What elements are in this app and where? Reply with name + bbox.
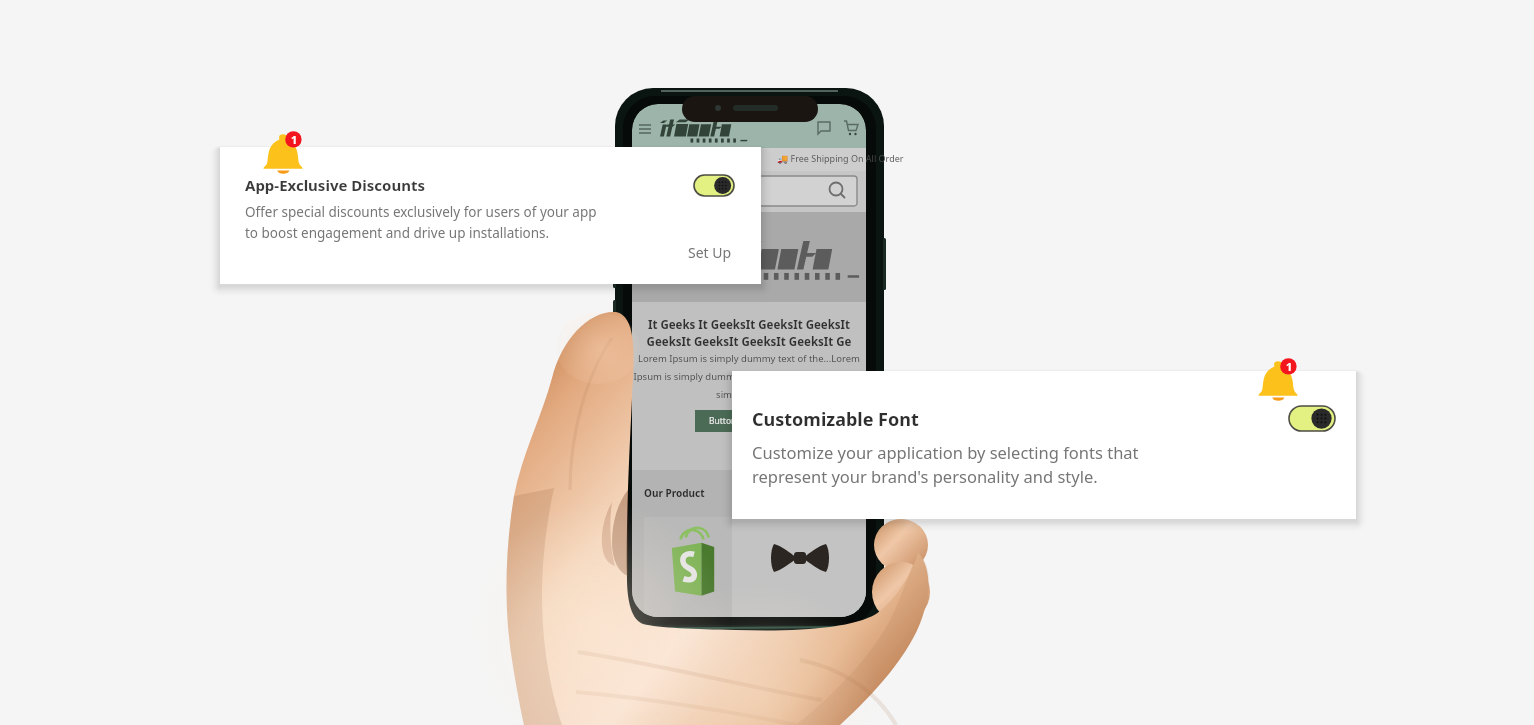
- button[interactable]: Set Up: [676, 235, 744, 270]
- staticText: Set Up: [688, 243, 732, 262]
- button[interactable]: Notifications, 1 unread: [1256, 357, 1302, 405]
- button[interactable]: Notifications, 1 unread: [261, 130, 307, 178]
- button[interactable]: Search: [641, 176, 857, 206]
- button[interactable]: Toggle Customizable Font: [1289, 406, 1335, 431]
- staticText: Customizable Font: [752, 407, 919, 432]
- button[interactable]: Customizable Font: [732, 371, 1356, 519]
- staticText: Lorem Ipsum is simply dummy text of the.…: [632, 352, 866, 401]
- button[interactable]: App-Exclusive Discounts: [220, 147, 761, 284]
- staticText: Button: [709, 415, 737, 427]
- staticText: Offer special discounts exclusively for …: [245, 203, 597, 242]
- button[interactable]: Button: [695, 410, 751, 432]
- staticText: 🚚 Free Shipping On All Order: [777, 152, 904, 164]
- button[interactable]: Menu: [640, 119, 666, 141]
- staticText: It Geeks It GeeksIt GeeksIt GeeksIt Geek…: [632, 317, 866, 350]
- staticText: App-Exclusive Discounts: [245, 175, 425, 195]
- button[interactable]: Toggle App-Exclusive Discounts: [694, 175, 734, 196]
- staticText: Our Product: [644, 486, 705, 500]
- staticText: Customize your application by selecting …: [752, 441, 1139, 488]
- button[interactable]: Messages: [812, 118, 838, 142]
- staticText: 1: [1286, 359, 1293, 374]
- button[interactable]: Cart: [840, 117, 866, 143]
- staticText: 1: [291, 132, 298, 147]
